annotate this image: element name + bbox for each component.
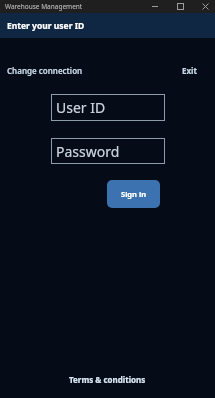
staticText: Warehouse Management — [5, 2, 83, 11]
staticText: Terms & conditions — [69, 374, 146, 385]
button[interactable]: Terms & conditions — [69, 374, 146, 385]
button[interactable]: Change connection — [0, 65, 83, 76]
staticText: Exit — [182, 65, 197, 76]
button[interactable]: Exit — [182, 65, 215, 76]
staticText: Change connection — [7, 65, 83, 76]
staticText: User ID — [56, 98, 106, 117]
staticText: Password — [56, 142, 120, 161]
staticText: Sign in — [121, 189, 147, 199]
button[interactable]: Sign in — [107, 180, 160, 208]
button[interactable]: Password — [51, 138, 165, 164]
staticText: Enter your user ID — [7, 20, 85, 32]
button[interactable]: User ID — [51, 94, 165, 121]
